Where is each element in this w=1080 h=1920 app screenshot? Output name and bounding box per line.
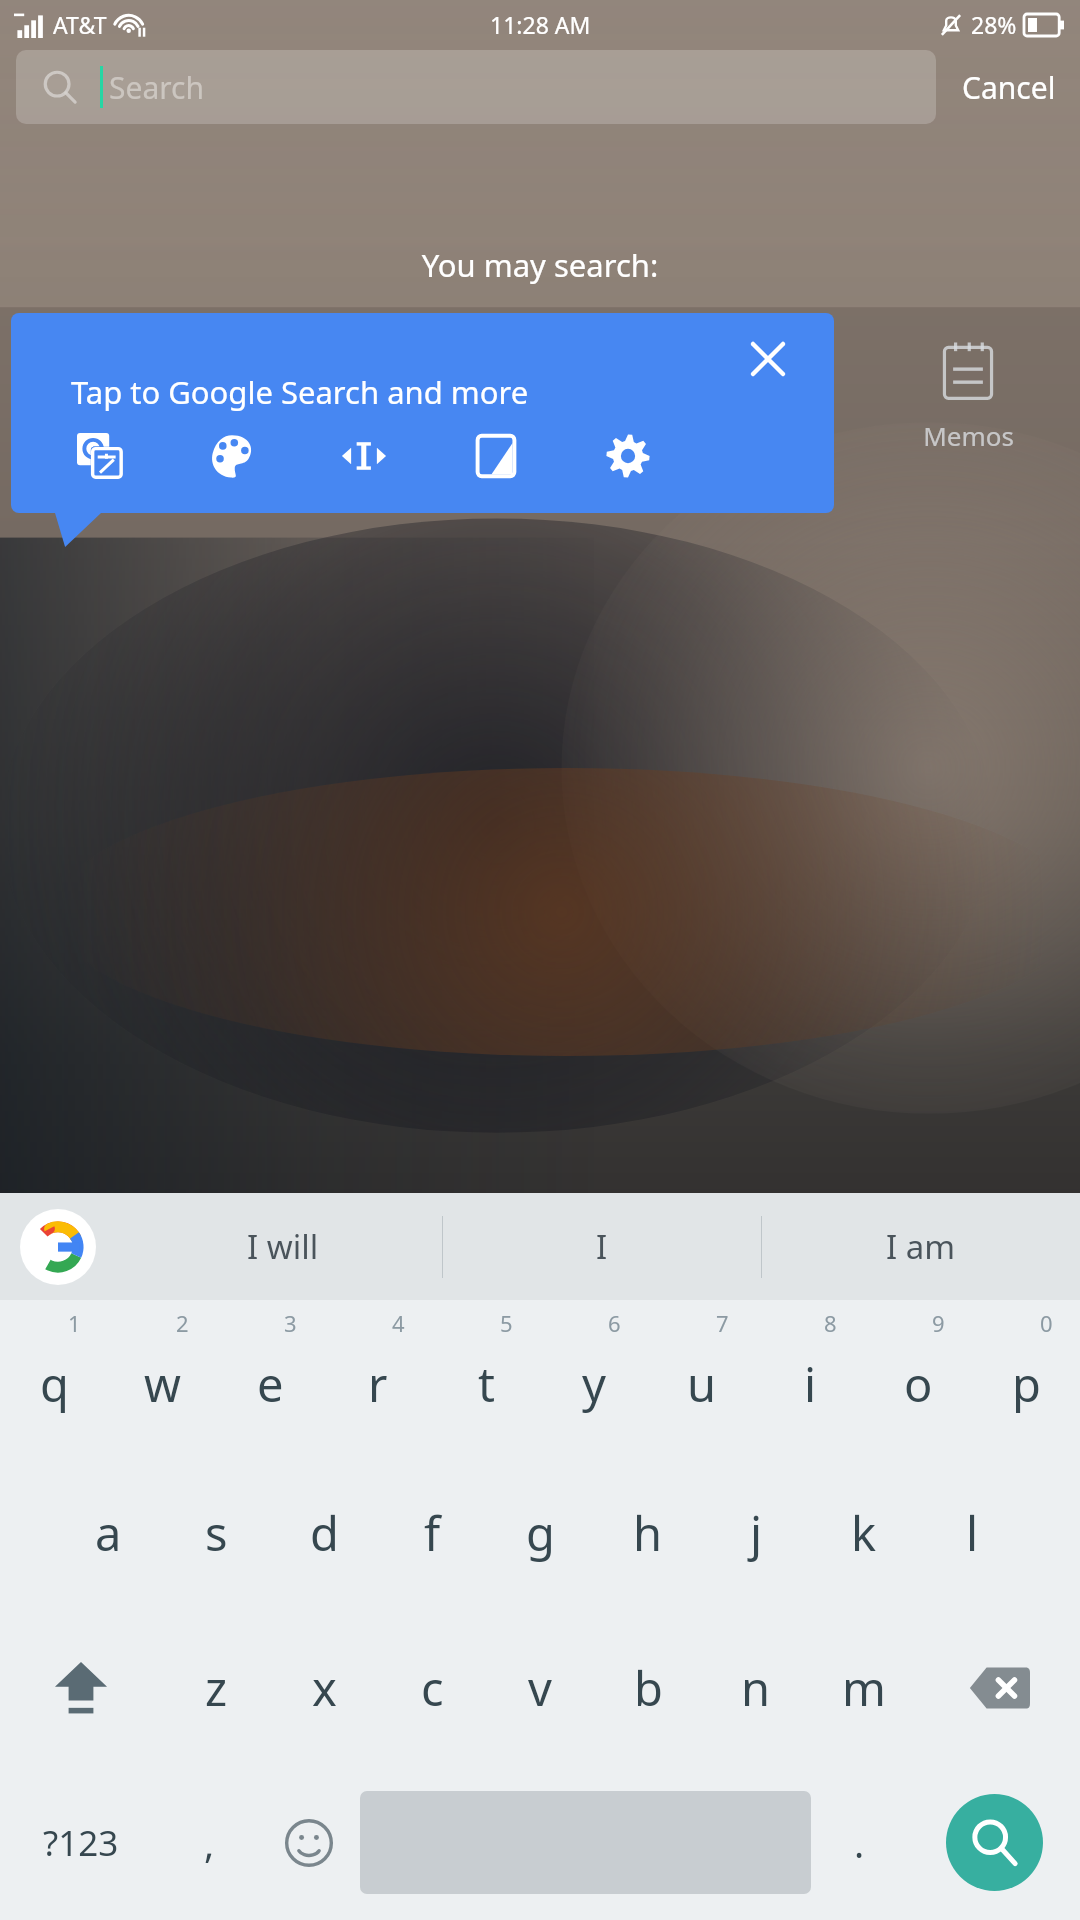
- button[interactable]: Translate: [73, 429, 127, 483]
- staticText: I will: [247, 1224, 319, 1269]
- button[interactable]: l: [918, 1455, 1026, 1610]
- staticText: I: [596, 1224, 608, 1269]
- staticText: 2: [176, 1308, 189, 1338]
- button[interactable]: Apps: [22, 336, 202, 457]
- button[interactable]: c: [378, 1610, 486, 1765]
- staticText: Messages: [480, 418, 601, 453]
- button[interactable]: k: [810, 1455, 918, 1610]
- button[interactable]: 8: [756, 1300, 864, 1455]
- button[interactable]: h: [594, 1455, 702, 1610]
- staticText: x: [312, 1656, 337, 1720]
- button[interactable]: Search: [16, 50, 936, 124]
- button[interactable]: 1: [0, 1300, 108, 1455]
- button[interactable]: n: [702, 1610, 810, 1765]
- staticText: t: [478, 1352, 495, 1416]
- button[interactable]: 5: [432, 1300, 540, 1455]
- button[interactable]: Memos: [878, 336, 1058, 457]
- button[interactable]: m: [810, 1610, 918, 1765]
- staticText: ,: [204, 1817, 215, 1869]
- staticText: r: [368, 1352, 388, 1416]
- staticText: 1: [68, 1308, 81, 1338]
- staticText: 4: [392, 1308, 405, 1338]
- button[interactable]: j: [702, 1455, 810, 1610]
- button[interactable]: x: [270, 1610, 378, 1765]
- button[interactable]: I am: [762, 1193, 1080, 1300]
- staticText: l: [966, 1501, 979, 1565]
- button[interactable]: Tap to Google Search and more: [11, 313, 834, 513]
- staticText: 5: [500, 1308, 513, 1338]
- staticText: w: [144, 1352, 181, 1416]
- staticText: e: [257, 1352, 284, 1416]
- button[interactable]: 0: [972, 1300, 1080, 1455]
- button[interactable]: ?123: [0, 1765, 161, 1920]
- staticText: p: [1012, 1352, 1041, 1416]
- button[interactable]: I: [443, 1193, 761, 1300]
- staticText: b: [634, 1656, 663, 1720]
- staticText: I am: [886, 1224, 956, 1269]
- staticText: i: [804, 1352, 817, 1416]
- staticText: Memos: [923, 418, 1014, 453]
- button[interactable]: b: [594, 1610, 702, 1765]
- staticText: f: [424, 1501, 441, 1565]
- staticText: v: [528, 1656, 552, 1720]
- staticText: 11:28 AM: [490, 9, 591, 40]
- button[interactable]: 2: [108, 1300, 216, 1455]
- button[interactable]: Browser: [664, 336, 844, 457]
- button[interactable]: Emoji: [258, 1765, 360, 1920]
- button[interactable]: s: [162, 1455, 270, 1610]
- button[interactable]: g: [486, 1455, 594, 1610]
- button[interactable]: Themes: [205, 429, 259, 483]
- button[interactable]: Google Search: [20, 1209, 96, 1285]
- staticText: Tap to Google Search and more: [71, 371, 529, 413]
- button[interactable]: 7: [648, 1300, 756, 1455]
- button[interactable]: .: [811, 1765, 908, 1920]
- button[interactable]: Contacts: [236, 336, 416, 457]
- staticText: .: [854, 1817, 865, 1869]
- staticText: 28%: [971, 9, 1017, 40]
- button[interactable]: Resize keyboard: [337, 429, 391, 483]
- staticText: Contacts: [273, 418, 380, 453]
- button[interactable]: One-handed mode: [469, 429, 523, 483]
- staticText: Search: [109, 67, 204, 108]
- staticText: u: [687, 1352, 717, 1416]
- button[interactable]: a: [54, 1455, 162, 1610]
- staticText: 0: [1040, 1308, 1053, 1338]
- staticText: y: [582, 1352, 606, 1416]
- staticText: n: [741, 1656, 771, 1720]
- button[interactable]: f: [378, 1455, 486, 1610]
- staticText: h: [633, 1501, 663, 1565]
- button[interactable]: 4: [324, 1300, 432, 1455]
- staticText: m: [842, 1656, 886, 1720]
- staticText: ?123: [43, 1819, 119, 1867]
- button[interactable]: I will: [124, 1193, 442, 1300]
- button[interactable]: Close: [740, 331, 796, 387]
- button[interactable]: Settings: [601, 429, 655, 483]
- staticText: o: [904, 1352, 933, 1416]
- button[interactable]: z: [162, 1610, 270, 1765]
- button[interactable]: Shift: [0, 1610, 162, 1765]
- staticText: d: [310, 1501, 339, 1565]
- button[interactable]: 3: [216, 1300, 324, 1455]
- staticText: c: [421, 1656, 444, 1720]
- staticText: You may search:: [0, 244, 1080, 286]
- staticText: s: [205, 1501, 228, 1565]
- button[interactable]: 6: [540, 1300, 648, 1455]
- staticText: z: [205, 1656, 228, 1720]
- staticText: Apps: [81, 418, 143, 453]
- button[interactable]: 9: [864, 1300, 972, 1455]
- staticText: k: [851, 1501, 877, 1565]
- staticText: j: [750, 1501, 763, 1565]
- button[interactable]: v: [486, 1610, 594, 1765]
- button[interactable]: Messages: [450, 336, 630, 457]
- button[interactable]: Search: [946, 1794, 1043, 1891]
- staticText: a: [95, 1501, 122, 1565]
- staticText: 3: [284, 1308, 297, 1338]
- button[interactable]: d: [270, 1455, 378, 1610]
- staticText: 7: [716, 1308, 729, 1338]
- button[interactable]: ,: [161, 1765, 258, 1920]
- button[interactable]: Backspace: [918, 1610, 1080, 1765]
- staticText: g: [526, 1501, 555, 1565]
- button[interactable]: Cancel: [954, 57, 1064, 118]
- staticText: Cancel: [962, 67, 1056, 108]
